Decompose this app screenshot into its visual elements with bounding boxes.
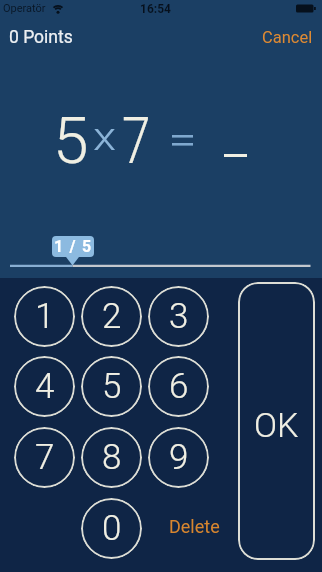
button[interactable]: 4 — [14, 356, 75, 417]
button[interactable]: 8 — [81, 427, 142, 488]
staticText: 4 — [35, 366, 55, 407]
button[interactable]: 6 — [148, 356, 209, 417]
button[interactable]: 0 — [81, 498, 142, 559]
staticText: 3 — [169, 296, 189, 337]
button[interactable]: 1 — [14, 286, 75, 347]
staticText: 5 — [53, 104, 89, 179]
button[interactable]: Cancel — [248, 28, 313, 46]
staticText: 0 — [102, 508, 122, 549]
staticText: 9 — [169, 437, 189, 478]
staticText: 0 Points — [9, 27, 73, 48]
button[interactable]: 2 — [81, 286, 142, 347]
staticText: 5 — [102, 366, 122, 407]
staticText: 1 / 5 — [54, 237, 93, 256]
staticText: 16:54 — [140, 2, 171, 16]
button[interactable]: 9 — [148, 427, 209, 488]
staticText: OK — [254, 405, 299, 445]
staticText: Cancel — [262, 28, 313, 46]
staticText: 1 — [35, 296, 55, 337]
staticText: x — [93, 115, 117, 160]
staticText: 6 — [169, 366, 189, 407]
button[interactable]: Delete — [166, 513, 222, 539]
staticText: Operatör — [3, 2, 46, 15]
staticText: 7 — [122, 104, 151, 179]
button[interactable]: OK — [238, 282, 315, 560]
staticText: Delete — [169, 516, 220, 537]
staticText: 7 — [35, 437, 55, 478]
button[interactable]: 5 — [81, 356, 142, 417]
staticText: 2 — [102, 296, 122, 337]
staticText: 8 — [102, 437, 122, 478]
button[interactable]: 3 — [148, 286, 209, 347]
button[interactable]: 7 — [14, 427, 75, 488]
